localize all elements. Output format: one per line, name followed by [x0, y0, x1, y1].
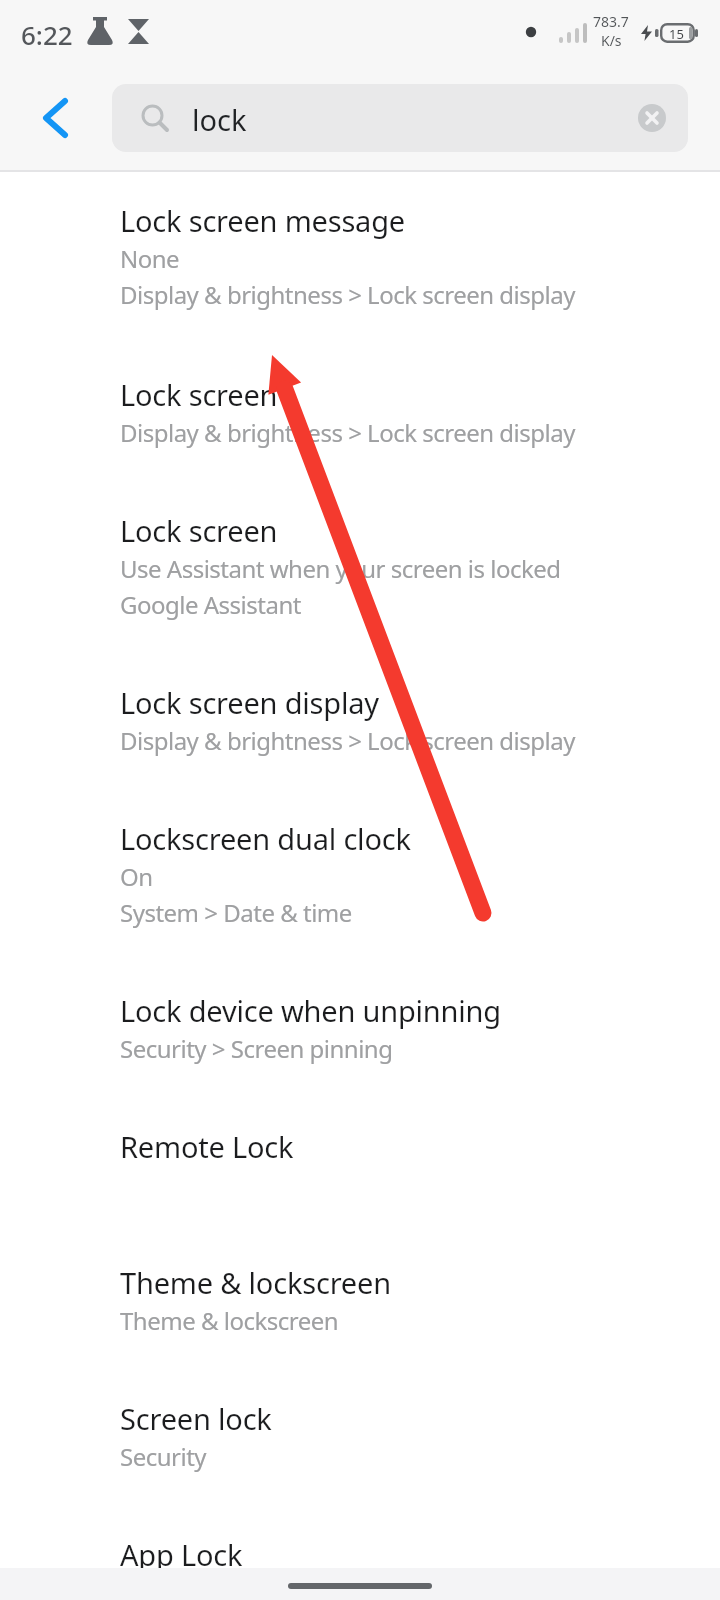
button[interactable]: Lockscreen dual clock	[0, 818, 720, 930]
button[interactable]	[32, 92, 78, 144]
staticText: Google Assistant	[120, 588, 301, 621]
button[interactable]	[638, 104, 666, 132]
staticText: On	[120, 860, 153, 893]
staticText: K/s	[601, 31, 622, 50]
staticText: lock	[192, 100, 247, 139]
staticText: Lock device when unpinning	[120, 991, 501, 1030]
staticText: Display & brightness > Lock screen displ…	[120, 416, 575, 449]
staticText: Lock screen message	[120, 201, 405, 240]
button[interactable]: Lock screen	[0, 510, 720, 622]
staticText: Lockscreen dual clock	[120, 819, 411, 858]
staticText: Theme & lockscreen	[120, 1263, 391, 1302]
button[interactable]: Screen lock	[0, 1398, 720, 1474]
button[interactable]: App Lock	[0, 1534, 720, 1574]
staticText: System > Date & time	[120, 896, 352, 929]
staticText: Screen lock	[120, 1399, 272, 1438]
staticText: Lock screen	[120, 375, 278, 414]
staticText: Security	[120, 1440, 207, 1473]
staticText: Use Assistant when your screen is locked	[120, 552, 561, 585]
staticText: 15	[669, 25, 684, 43]
staticText: Remote Lock	[120, 1127, 294, 1166]
staticText: 783.7	[593, 12, 629, 31]
staticText: Lock screen display	[120, 683, 379, 722]
button[interactable]: lock	[112, 84, 688, 152]
button[interactable]: Lock device when unpinning	[0, 990, 720, 1066]
button[interactable]: Theme & lockscreen	[0, 1262, 720, 1338]
staticText: Display & brightness > Lock screen displ…	[120, 724, 575, 757]
button[interactable]: Lock screen	[0, 374, 720, 450]
button[interactable]: Lock screen message	[0, 200, 720, 312]
button[interactable]: Remote Lock	[0, 1126, 720, 1166]
staticText: App Lock	[120, 1535, 243, 1574]
staticText: None	[120, 242, 180, 275]
staticText: Display & brightness > Lock screen displ…	[120, 278, 575, 311]
staticText: Theme & lockscreen	[120, 1304, 339, 1337]
staticText: 6:22	[21, 17, 73, 52]
staticText: Lock screen	[120, 511, 278, 550]
staticText: Security > Screen pinning	[120, 1032, 393, 1065]
button[interactable]: Lock screen display	[0, 682, 720, 758]
